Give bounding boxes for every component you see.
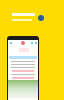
button[interactable]: Profile	[38, 15, 44, 21]
button[interactable]	[7, 36, 39, 100]
